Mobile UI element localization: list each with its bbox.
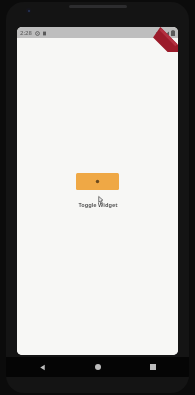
button[interactable]: Toggle Widget	[78, 201, 118, 208]
button[interactable]: Recent apps	[143, 357, 163, 377]
button[interactable]: Home	[88, 357, 108, 377]
staticText: 2:28	[20, 29, 32, 37]
button[interactable]	[76, 173, 119, 190]
button[interactable]: Back	[32, 357, 52, 377]
